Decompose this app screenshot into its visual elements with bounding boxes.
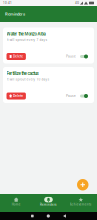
staticText: Reminders [40, 203, 57, 206]
button[interactable]: Add reminder [77, 179, 88, 190]
staticText: Reminders [5, 11, 25, 16]
staticText: Fertilize the cactus [6, 71, 38, 76]
button[interactable]: Delete [6, 53, 26, 60]
staticText: Pause [66, 94, 76, 98]
staticText: It will sprout every 7 days [6, 38, 47, 42]
button[interactable]: Recent apps [31, 215, 34, 217]
staticText: Water the Monzo Alba [6, 31, 45, 37]
staticText: 10:41 [3, 1, 12, 5]
staticText: Achievements [70, 203, 92, 206]
staticText: Home [12, 203, 21, 206]
button[interactable]: Home [47, 214, 50, 218]
staticText: Delete [13, 55, 23, 58]
button[interactable]: Delete [6, 92, 26, 99]
button[interactable]: Pause reminder [80, 94, 88, 98]
button[interactable]: Home [0, 195, 32, 211]
staticText: Pause [66, 55, 76, 58]
button[interactable]: Back [63, 214, 66, 218]
button[interactable]: Achievements [65, 195, 97, 211]
button[interactable]: Reminders [32, 194, 65, 211]
staticText: Delete [13, 94, 23, 98]
button[interactable]: Pause reminder [80, 54, 88, 59]
staticText: It will sprout every 10 days [6, 78, 49, 81]
staticText: 4G [75, 1, 79, 5]
